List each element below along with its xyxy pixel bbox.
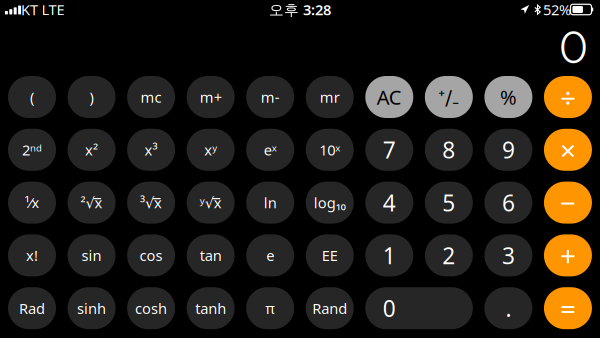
button[interactable]: 2ⁿᵈ bbox=[8, 129, 56, 171]
staticText: log₁₀ bbox=[314, 193, 346, 212]
button[interactable]: AC bbox=[365, 76, 413, 118]
staticText: sin bbox=[81, 246, 101, 265]
button[interactable]: ⁺∕₋ bbox=[425, 76, 473, 118]
staticText: 10ˣ bbox=[319, 140, 340, 160]
button[interactable]: 10ˣ bbox=[306, 129, 354, 171]
staticText: AC bbox=[377, 84, 402, 110]
staticText: ʸ√x bbox=[200, 193, 222, 212]
button[interactable]: e bbox=[246, 234, 294, 276]
staticText: 52% bbox=[543, 0, 571, 19]
button[interactable]: ʸ√x bbox=[187, 182, 235, 224]
button[interactable]: . bbox=[484, 287, 532, 329]
staticText: xʸ bbox=[204, 140, 217, 160]
button[interactable]: sinh bbox=[67, 287, 115, 329]
button[interactable]: ÷ bbox=[544, 76, 592, 118]
button[interactable]: % bbox=[484, 76, 532, 118]
staticText: sinh bbox=[77, 298, 106, 318]
button[interactable]: Rad bbox=[8, 287, 56, 329]
button[interactable]: ) bbox=[67, 76, 115, 118]
button[interactable]: EE bbox=[306, 234, 354, 276]
button[interactable]: 0 bbox=[365, 287, 473, 329]
button[interactable]: 3 bbox=[484, 234, 532, 276]
button[interactable]: π bbox=[246, 287, 294, 329]
button[interactable]: x! bbox=[8, 234, 56, 276]
staticText: mc bbox=[141, 87, 162, 107]
staticText: tanh bbox=[195, 298, 226, 318]
staticText: x² bbox=[85, 140, 98, 160]
staticText: tan bbox=[200, 246, 222, 265]
staticText: ) bbox=[89, 87, 93, 107]
button[interactable]: ³√x bbox=[127, 182, 175, 224]
staticText: = bbox=[560, 290, 576, 327]
staticText: cos bbox=[140, 246, 163, 265]
staticText: ÷ bbox=[560, 78, 576, 116]
staticText: 2ⁿᵈ bbox=[22, 140, 42, 160]
button[interactable]: 1 bbox=[365, 234, 413, 276]
staticText: Rand bbox=[312, 298, 347, 318]
staticText: 2 bbox=[442, 240, 455, 270]
button[interactable]: eˣ bbox=[246, 129, 294, 171]
button[interactable]: cosh bbox=[127, 287, 175, 329]
staticText: 3 bbox=[502, 240, 515, 270]
button[interactable]: × bbox=[544, 129, 592, 171]
staticText: π bbox=[265, 298, 275, 318]
button[interactable]: 4 bbox=[365, 182, 413, 224]
button[interactable]: m- bbox=[246, 76, 294, 118]
staticText: LTE bbox=[41, 0, 64, 19]
button[interactable]: ( bbox=[8, 76, 56, 118]
staticText: mr bbox=[320, 87, 340, 107]
button[interactable]: sin bbox=[67, 234, 115, 276]
staticText: ( bbox=[30, 87, 34, 107]
staticText: 8 bbox=[442, 135, 455, 165]
staticText: 0 bbox=[559, 20, 588, 74]
staticText: 6 bbox=[502, 187, 515, 218]
staticText: e bbox=[266, 246, 274, 265]
staticText: 9 bbox=[502, 135, 515, 165]
staticText: 7 bbox=[383, 135, 396, 165]
staticText: x³ bbox=[145, 140, 158, 160]
button[interactable]: log₁₀ bbox=[306, 182, 354, 224]
staticText: % bbox=[500, 84, 517, 110]
button[interactable]: 9 bbox=[484, 129, 532, 171]
button[interactable]: cos bbox=[127, 234, 175, 276]
button[interactable]: x² bbox=[67, 129, 115, 171]
staticText: ¹⁄x bbox=[24, 193, 39, 212]
button[interactable]: 5 bbox=[425, 182, 473, 224]
staticText: m+ bbox=[200, 87, 222, 107]
button[interactable]: xʸ bbox=[187, 129, 235, 171]
button[interactable]: x³ bbox=[127, 129, 175, 171]
button[interactable]: m+ bbox=[187, 76, 235, 118]
staticText: m- bbox=[261, 87, 280, 107]
staticText: 1 bbox=[383, 240, 396, 270]
staticText: 오후 3:28 bbox=[269, 0, 331, 19]
staticText: + bbox=[560, 237, 576, 274]
button[interactable]: mr bbox=[306, 76, 354, 118]
button[interactable]: = bbox=[544, 287, 592, 329]
button[interactable]: + bbox=[544, 234, 592, 276]
staticText: x! bbox=[26, 246, 38, 265]
button[interactable]: tan bbox=[187, 234, 235, 276]
button[interactable]: − bbox=[544, 182, 592, 224]
button[interactable]: 6 bbox=[484, 182, 532, 224]
staticText: − bbox=[560, 184, 576, 221]
staticText: eˣ bbox=[264, 140, 277, 160]
staticText: KT bbox=[21, 0, 38, 19]
staticText: cosh bbox=[135, 298, 167, 318]
staticText: Rad bbox=[19, 298, 45, 318]
staticText: 4 bbox=[383, 187, 396, 218]
button[interactable]: 2 bbox=[425, 234, 473, 276]
staticText: ³√x bbox=[140, 193, 162, 212]
button[interactable]: Rand bbox=[306, 287, 354, 329]
button[interactable]: ln bbox=[246, 182, 294, 224]
staticText: 0 bbox=[383, 293, 396, 323]
staticText: ⁺∕₋ bbox=[438, 84, 459, 110]
staticText: . bbox=[505, 293, 511, 323]
staticText: EE bbox=[322, 246, 338, 265]
button[interactable]: 7 bbox=[365, 129, 413, 171]
button[interactable]: ¹⁄x bbox=[8, 182, 56, 224]
button[interactable]: mc bbox=[127, 76, 175, 118]
staticText: × bbox=[560, 131, 576, 168]
button[interactable]: 8 bbox=[425, 129, 473, 171]
button[interactable]: tanh bbox=[187, 287, 235, 329]
button[interactable]: ²√x bbox=[67, 182, 115, 224]
